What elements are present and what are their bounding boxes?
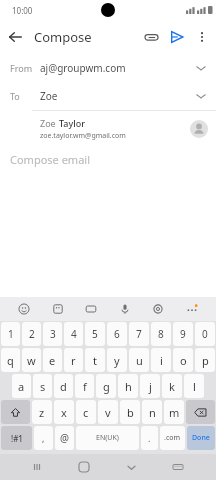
button[interactable]: 7 [129,322,149,346]
button[interactable]: 4 [64,322,83,346]
button[interactable]: t [85,348,105,372]
button[interactable]: h [118,374,138,398]
button[interactable]: Done [187,426,215,450]
staticText: 10:00 [12,5,33,16]
button[interactable]: r [64,348,83,372]
staticText: a [18,379,25,394]
button[interactable]: Attach [138,24,164,50]
button[interactable]: Settings [149,300,167,318]
button[interactable]: 9 [173,322,193,346]
staticText: k [169,379,175,394]
staticText: !#1 [11,433,23,444]
button[interactable]: Home [73,456,95,478]
staticText: @ [60,431,69,445]
button[interactable]: Recents [26,456,48,478]
staticText: .com [164,433,181,443]
button[interactable]: f [75,374,94,398]
staticText: b [127,405,134,420]
staticText: x [61,405,67,420]
button[interactable]: Voice input [116,300,134,318]
button[interactable]: 0 [195,322,215,346]
staticText: t [93,353,97,368]
staticText: . [148,432,151,444]
button[interactable]: EN(UK) [76,426,139,450]
button[interactable]: d [54,374,73,398]
button[interactable]: y [107,348,127,372]
button[interactable]: , [34,426,53,450]
staticText: s [40,379,46,394]
button[interactable]: Send [164,24,190,50]
staticText: e [49,353,56,368]
button[interactable]: !#1 [1,426,32,450]
button[interactable]: a [12,374,31,398]
button[interactable]: p [195,348,215,372]
button[interactable]: q [1,348,20,372]
button[interactable]: e [43,348,62,372]
button[interactable]: u [129,348,149,372]
button[interactable]: x [54,400,74,424]
staticText: f [83,379,87,394]
staticText: d [60,379,67,394]
button[interactable]: 3 [43,322,62,346]
button[interactable]: Hide keyboard [120,456,142,478]
button[interactable]: From [0,54,216,82]
staticText: o [180,353,187,368]
button[interactable]: 2 [22,322,41,346]
button[interactable]: o [173,348,193,372]
button[interactable]: To [0,82,216,110]
button[interactable]: Shift [1,400,30,424]
staticText: Compose email [10,152,90,167]
button[interactable]: 1 [1,322,20,346]
staticText: j [149,379,152,394]
staticText: 3 [50,327,56,341]
staticText: Compose [34,28,92,46]
staticText: u [136,353,143,368]
staticText: 0 [202,327,208,341]
button[interactable]: 5 [85,322,105,346]
button[interactable]: Stickers [49,300,67,318]
button[interactable]: Backspace [186,400,215,424]
staticText: Zoe [40,117,59,129]
staticText: 4 [71,327,77,341]
button[interactable]: c [76,400,96,424]
button[interactable]: @ [55,426,74,450]
button[interactable]: w [22,348,41,372]
staticText: 9 [180,327,186,341]
button[interactable]: 8 [151,322,171,346]
staticText: n [149,405,156,420]
button[interactable]: g [96,374,116,398]
button[interactable]: k [162,374,182,398]
button[interactable]: More [183,300,201,318]
staticText: h [125,379,132,394]
button[interactable]: v [98,400,118,424]
staticText: p [202,353,209,368]
button[interactable]: Switch keyboard [167,456,189,478]
button[interactable]: z [32,400,52,424]
button[interactable]: n [142,400,162,424]
button[interactable]: i [151,348,171,372]
button[interactable]: 6 [107,322,127,346]
staticText: EN(UK) [96,433,119,443]
button[interactable]: Back [0,22,30,52]
staticText: 7 [136,327,142,341]
staticText: w [27,353,36,368]
staticText: 5 [92,327,98,341]
button[interactable]: m [164,400,184,424]
staticText: c [83,405,89,420]
staticText: 1 [8,327,14,341]
button[interactable]: Zoe [32,110,216,148]
staticText: Taylor [59,117,85,129]
staticText: l [193,379,196,394]
button[interactable]: . [141,426,158,450]
staticText: 6 [114,327,120,341]
button[interactable]: .com [160,426,185,450]
button[interactable]: j [140,374,160,398]
button[interactable]: s [33,374,52,398]
button[interactable]: Emoji [15,300,33,318]
button[interactable]: l [184,374,204,398]
button[interactable]: b [120,400,140,424]
button[interactable]: More options [190,25,214,49]
staticText: q [7,353,14,368]
button[interactable]: GIF [82,300,100,318]
staticText: Done [192,433,210,443]
